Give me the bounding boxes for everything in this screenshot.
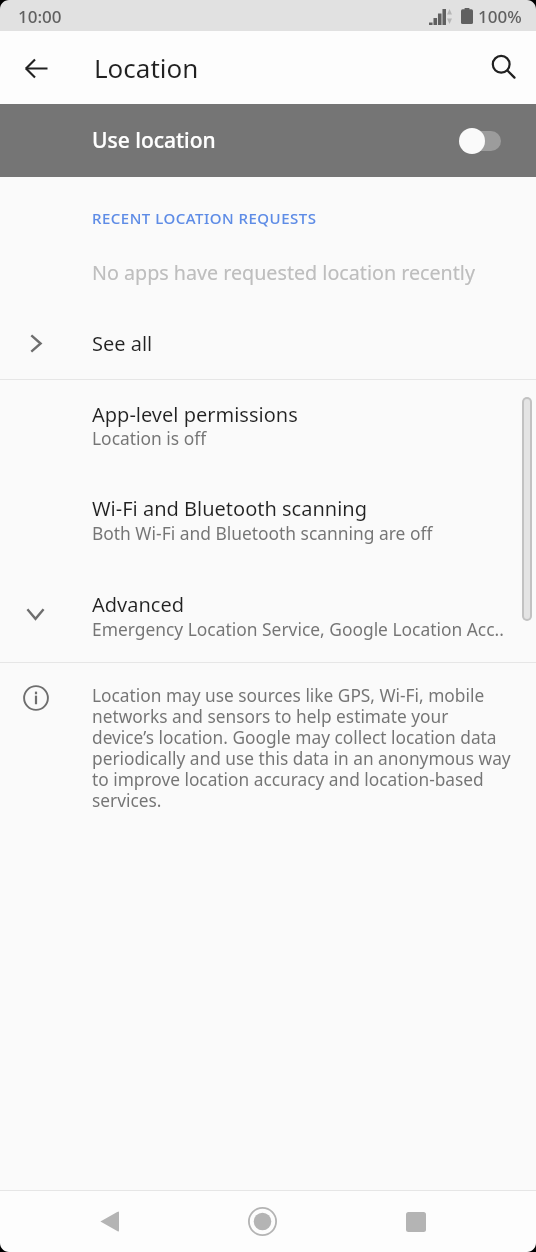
staticText: Emergency Location Service, Google Locat… [92, 617, 504, 641]
staticText: Wi-Fi and Bluetooth scanning [92, 495, 367, 522]
button[interactable]: Use location [0, 104, 536, 177]
staticText: See all [92, 330, 153, 357]
button[interactable]: Navigate up [12, 44, 60, 92]
button[interactable]: Recent apps [385, 1191, 446, 1252]
staticText: 10:00 [18, 5, 62, 28]
staticText: Location is off [92, 426, 207, 450]
staticText: 100% [478, 5, 522, 28]
staticText: Use location [92, 126, 216, 155]
button[interactable]: Home [232, 1191, 293, 1252]
button[interactable]: Advanced [0, 578, 536, 642]
button[interactable]: App-level permissions [0, 388, 536, 448]
staticText: Location may use sources like GPS, Wi-Fi… [92, 684, 512, 813]
staticText: Both Wi-Fi and Bluetooth scanning are of… [92, 521, 433, 545]
button[interactable]: Back [79, 1191, 140, 1252]
staticText: Advanced [92, 591, 184, 618]
staticText: Location [94, 50, 199, 85]
staticText: RECENT LOCATION REQUESTS [92, 208, 317, 228]
staticText: App-level permissions [92, 401, 298, 428]
staticText: No apps have requested location recently [92, 259, 475, 286]
button[interactable]: Search [479, 42, 527, 90]
button[interactable]: Wi-Fi and Bluetooth scanning [0, 482, 536, 544]
button[interactable]: See all [0, 310, 536, 372]
